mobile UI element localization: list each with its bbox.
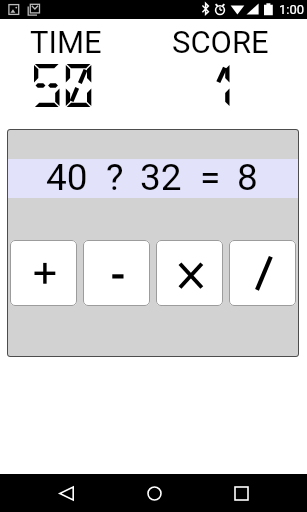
button[interactable]: minus	[83, 240, 150, 306]
staticText: 8	[237, 156, 258, 195]
staticText: ?	[106, 156, 124, 195]
staticText: =	[200, 156, 221, 195]
button[interactable]: plus	[10, 240, 77, 306]
button[interactable]: Home	[132, 474, 176, 512]
staticText: TIME	[30, 24, 102, 60]
staticText: 40	[46, 156, 88, 195]
staticText: 1:00	[279, 2, 305, 17]
button[interactable]: divide	[229, 240, 296, 306]
button[interactable]: multiply	[156, 240, 223, 306]
button[interactable]: Back	[44, 474, 88, 512]
staticText: 32	[140, 156, 182, 195]
button[interactable]: Recent apps	[219, 474, 263, 512]
staticText: SCORE	[172, 24, 269, 60]
